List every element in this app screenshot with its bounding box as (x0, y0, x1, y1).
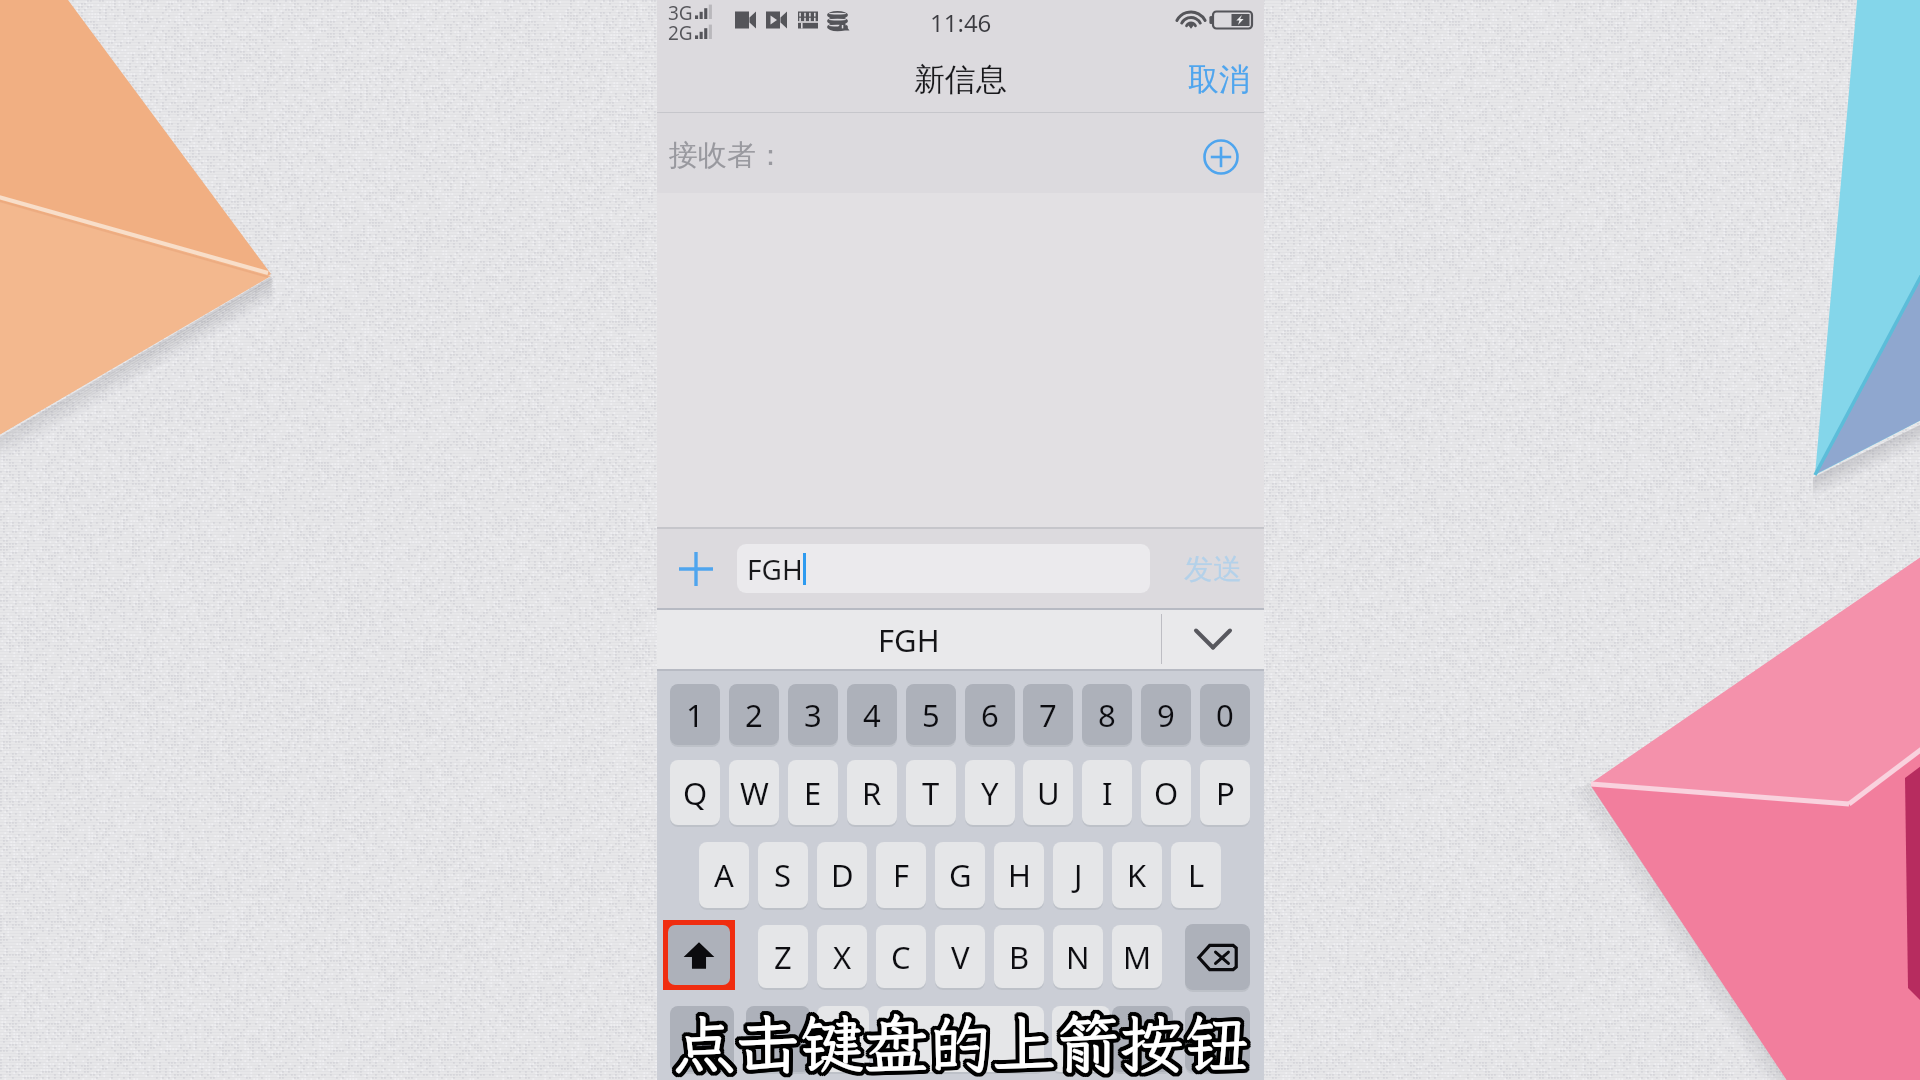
button[interactable]: FGH (737, 544, 1150, 593)
staticText: 3 (804, 694, 822, 736)
button[interactable]: Z (758, 925, 808, 988)
button[interactable]: X (817, 925, 867, 988)
button[interactable]: Q (670, 760, 720, 825)
button[interactable]: 7 (1023, 684, 1073, 745)
staticText: S (774, 854, 792, 896)
staticText: 7 (1039, 694, 1057, 736)
staticText: 4 (863, 694, 881, 736)
staticText: O (1154, 772, 1179, 814)
staticText: I (1102, 772, 1113, 814)
button[interactable]: C (876, 925, 926, 988)
staticText: 点击键盘的上箭按钮 (675, 1004, 1251, 1080)
staticText: K (1127, 854, 1147, 896)
button[interactable]: 接收者： (657, 113, 1264, 193)
button[interactable]: V (935, 925, 985, 988)
staticText: 6 (981, 694, 999, 736)
button[interactable]: 4 (847, 684, 897, 745)
staticText: 5 (922, 694, 940, 736)
button[interactable]: K (1112, 842, 1162, 908)
button[interactable]: M (1112, 925, 1162, 988)
staticText: 点击键盘的上箭按钮 (676, 1003, 1252, 1080)
button[interactable]: 发送 (1176, 547, 1250, 591)
staticText: 2 (745, 694, 763, 736)
staticText: A (714, 854, 734, 896)
staticText: G (949, 854, 972, 896)
button[interactable]: U (1023, 760, 1073, 825)
staticText: M (1123, 936, 1152, 978)
staticText: 点击键盘的上箭按钮 (674, 997, 1250, 1080)
button[interactable]: FGH (657, 610, 1161, 669)
button[interactable]: S (758, 842, 808, 908)
staticText: 新信息 (914, 60, 1007, 99)
staticText: 1 (686, 694, 704, 736)
button[interactable]: J (1053, 842, 1103, 908)
staticText: W (740, 772, 769, 814)
staticText: R (862, 772, 882, 814)
button[interactable]: , (817, 1006, 869, 1072)
staticText: D (831, 854, 854, 896)
button[interactable]: I (1082, 760, 1132, 825)
button[interactable]: T (906, 760, 956, 825)
button[interactable]: 2 (729, 684, 779, 745)
button[interactable]: . (1052, 1006, 1110, 1072)
staticText: P (1216, 772, 1235, 814)
staticText: Z (774, 936, 792, 978)
staticText: U (1037, 772, 1060, 814)
button[interactable]: 5 (906, 684, 956, 745)
button[interactable]: W (729, 760, 779, 825)
staticText: C (891, 936, 911, 978)
button[interactable]: 9 (1141, 684, 1191, 745)
staticText: 点击键盘的上箭按钮 (670, 1005, 1246, 1080)
button[interactable]: F (876, 842, 926, 908)
button[interactable]: R (847, 760, 897, 825)
button[interactable]: Attach (676, 549, 716, 589)
button[interactable]: Shift (663, 920, 735, 990)
button[interactable]: 1 (670, 684, 720, 745)
button[interactable]: Space (877, 1006, 1044, 1072)
button[interactable]: ?123 (670, 1006, 734, 1072)
staticText: 8 (1098, 694, 1116, 736)
button[interactable]: A (699, 842, 749, 908)
button[interactable]: O (1141, 760, 1191, 825)
button[interactable]: 取消 (1170, 52, 1264, 107)
staticText: 发送 (1184, 551, 1242, 588)
staticText: F (893, 854, 910, 896)
staticText: B (1009, 936, 1030, 978)
staticText: 2G (668, 20, 693, 46)
staticText: =\< (764, 1027, 792, 1052)
staticText: V (951, 936, 970, 978)
staticText: 点击键盘的上箭按钮 (675, 998, 1251, 1080)
button[interactable]: 0 (1200, 684, 1250, 745)
button[interactable]: E (788, 760, 838, 825)
button[interactable]: P (1200, 760, 1250, 825)
button[interactable]: Enter (1185, 1006, 1250, 1072)
staticText: 接收者： (669, 137, 785, 174)
staticText: 点击键盘的上箭按钮 (672, 997, 1248, 1080)
button[interactable]: H (994, 842, 1044, 908)
button[interactable]: Collapse suggestions (1162, 608, 1264, 669)
button[interactable]: L (1171, 842, 1221, 908)
button[interactable]: D (817, 842, 867, 908)
staticText: FGH (878, 619, 940, 661)
button[interactable]: =\< (746, 1006, 810, 1072)
button[interactable]: B (994, 925, 1044, 988)
staticText: 点击键盘的上箭按钮 (672, 1005, 1248, 1080)
staticText: 点击键盘的上箭按钮 (668, 1001, 1244, 1080)
button[interactable]: 中 (1112, 1006, 1173, 1072)
staticText: T (922, 772, 940, 814)
button[interactable]: N (1053, 925, 1103, 988)
staticText: 点击键盘的上箭按钮 (668, 999, 1244, 1080)
staticText: 点击键盘的上箭按钮 (669, 998, 1245, 1080)
staticText: 点击键盘的上箭按钮 (668, 1003, 1244, 1080)
button[interactable]: Add recipient (1201, 137, 1241, 177)
staticText: 0 (1216, 694, 1234, 736)
button[interactable]: 6 (965, 684, 1015, 745)
button[interactable]: 8 (1082, 684, 1132, 745)
button[interactable]: 3 (788, 684, 838, 745)
button[interactable]: Y (965, 760, 1015, 825)
button[interactable]: Backspace (1185, 924, 1250, 990)
staticText: 取消 (1188, 60, 1250, 99)
staticText: , (840, 1023, 847, 1056)
staticText: FGH (747, 550, 803, 588)
button[interactable]: G (935, 842, 985, 908)
